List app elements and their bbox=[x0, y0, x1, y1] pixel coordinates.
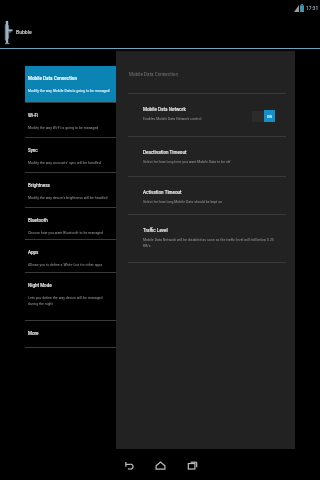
staticText: Apps bbox=[28, 249, 39, 255]
staticText: Brightness bbox=[28, 182, 50, 188]
staticText: Bluetooth bbox=[28, 217, 48, 223]
button[interactable]: Sync bbox=[25, 138, 116, 172]
staticText: 17:31 bbox=[306, 5, 319, 11]
staticText: Modify the way Mobile Data is going to b… bbox=[28, 88, 110, 93]
staticText: Wi-Fi bbox=[28, 112, 39, 118]
staticText: Night Mode bbox=[28, 282, 52, 288]
button[interactable]: Wi-Fi bbox=[25, 103, 116, 137]
button[interactable]: Bluetooth bbox=[25, 208, 116, 239]
staticText: Modify the way Wi-Fi is going to be mana… bbox=[28, 125, 99, 130]
staticText: ON bbox=[267, 114, 272, 119]
button[interactable]: Home bbox=[150, 455, 170, 475]
button[interactable]: Traffic Level bbox=[116, 215, 295, 262]
staticText: Mobile Data Network will be disabled as … bbox=[143, 237, 279, 248]
button[interactable]: Mobile data switch, on bbox=[252, 110, 275, 122]
button[interactable]: More bbox=[25, 321, 116, 347]
button[interactable]: Mobile Data Connection bbox=[25, 66, 116, 102]
staticText: Modify the way device's brightness will … bbox=[28, 195, 108, 200]
button[interactable]: Apps bbox=[25, 240, 116, 272]
button[interactable]: Back bbox=[118, 455, 138, 475]
staticText: Lets you define the way device will be m… bbox=[28, 295, 113, 306]
button[interactable]: Night Mode bbox=[25, 273, 116, 320]
staticText: Mobile Data Connection bbox=[28, 75, 77, 81]
staticText: Modify the way accounts' sync will be ha… bbox=[28, 160, 101, 165]
button[interactable]: App icon bbox=[1, 18, 14, 46]
staticText: Mobile Data Connection bbox=[129, 71, 178, 77]
staticText: Choose how you want Bluetooth to be mana… bbox=[28, 230, 103, 235]
button[interactable]: Brightness bbox=[25, 173, 116, 207]
staticText: Traffic Level bbox=[143, 227, 168, 233]
staticText: More bbox=[28, 330, 39, 336]
staticText: Mobile Data Network bbox=[143, 106, 186, 112]
staticText: Sync bbox=[28, 147, 38, 153]
button[interactable]: Recent apps bbox=[182, 455, 202, 475]
button[interactable]: Mobile Data Network bbox=[116, 94, 295, 136]
staticText: Enables Mobile Data Network control bbox=[143, 116, 202, 121]
staticText: Select for how long time you want Mobile… bbox=[143, 159, 231, 164]
staticText: Activation Timeout bbox=[143, 189, 182, 195]
staticText: Deactivation Timeout bbox=[143, 149, 187, 155]
staticText: Allows you to define a White-List for ot… bbox=[28, 262, 103, 267]
button[interactable]: Activation Timeout bbox=[116, 177, 295, 214]
staticText: Bubble bbox=[16, 29, 32, 36]
staticText: Select for how long Mobile Data should b… bbox=[143, 199, 223, 204]
button[interactable]: Deactivation Timeout bbox=[116, 137, 295, 176]
